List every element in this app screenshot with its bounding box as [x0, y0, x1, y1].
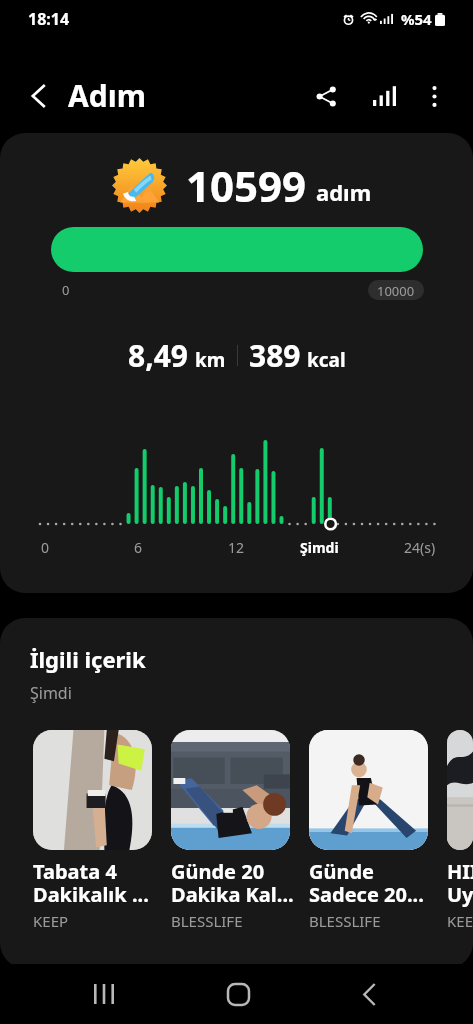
staticText: HII Uya — [447, 858, 473, 908]
button[interactable]: Tabata 4 Dakikalık ... — [33, 730, 171, 931]
staticText: BLESSLIFE — [309, 911, 381, 931]
staticText: 24(s) — [404, 538, 436, 557]
button[interactable]: Recents — [72, 964, 136, 1024]
staticText: 12 — [228, 538, 245, 557]
staticText: 18:14 — [28, 8, 70, 30]
staticText: İlgili içerik — [30, 644, 146, 674]
button[interactable]: 10599 — [0, 133, 473, 593]
button[interactable]: Back — [337, 964, 401, 1024]
staticText: %54 — [401, 9, 432, 29]
button[interactable]: More options — [410, 72, 458, 120]
staticText: 0 — [41, 538, 50, 557]
staticText: Adım — [68, 75, 146, 116]
staticText: 389 — [249, 335, 301, 376]
button[interactable]: HII Uya — [447, 730, 473, 931]
staticText: Günde Sadece 20... — [309, 858, 424, 908]
staticText: km — [195, 347, 226, 373]
staticText: 0 — [62, 281, 70, 299]
staticText: Tabata 4 Dakikalık ... — [33, 858, 149, 908]
staticText: Günde 20 Dakika Kal... — [171, 858, 294, 908]
staticText: BLESSLIFE — [171, 911, 243, 931]
button[interactable]: Home — [206, 964, 270, 1024]
button[interactable]: Günde Sadece 20... — [309, 730, 447, 931]
staticText: 10599 — [186, 157, 307, 214]
staticText: Şimdi — [30, 682, 72, 704]
button[interactable]: Günde 20 Dakika Kal... — [171, 730, 309, 931]
staticText: Şimdi — [300, 538, 339, 557]
staticText: kcal — [307, 347, 346, 373]
staticText: adım — [316, 177, 372, 207]
button[interactable]: Statistics — [360, 72, 408, 120]
button[interactable]: Back — [14, 72, 62, 120]
staticText: 8,49 — [128, 335, 189, 376]
staticText: 6 — [134, 538, 143, 557]
button[interactable]: Share — [302, 72, 350, 120]
staticText: 10000 — [377, 282, 415, 298]
staticText: KEE — [447, 911, 473, 931]
staticText: KEEP — [33, 911, 69, 931]
